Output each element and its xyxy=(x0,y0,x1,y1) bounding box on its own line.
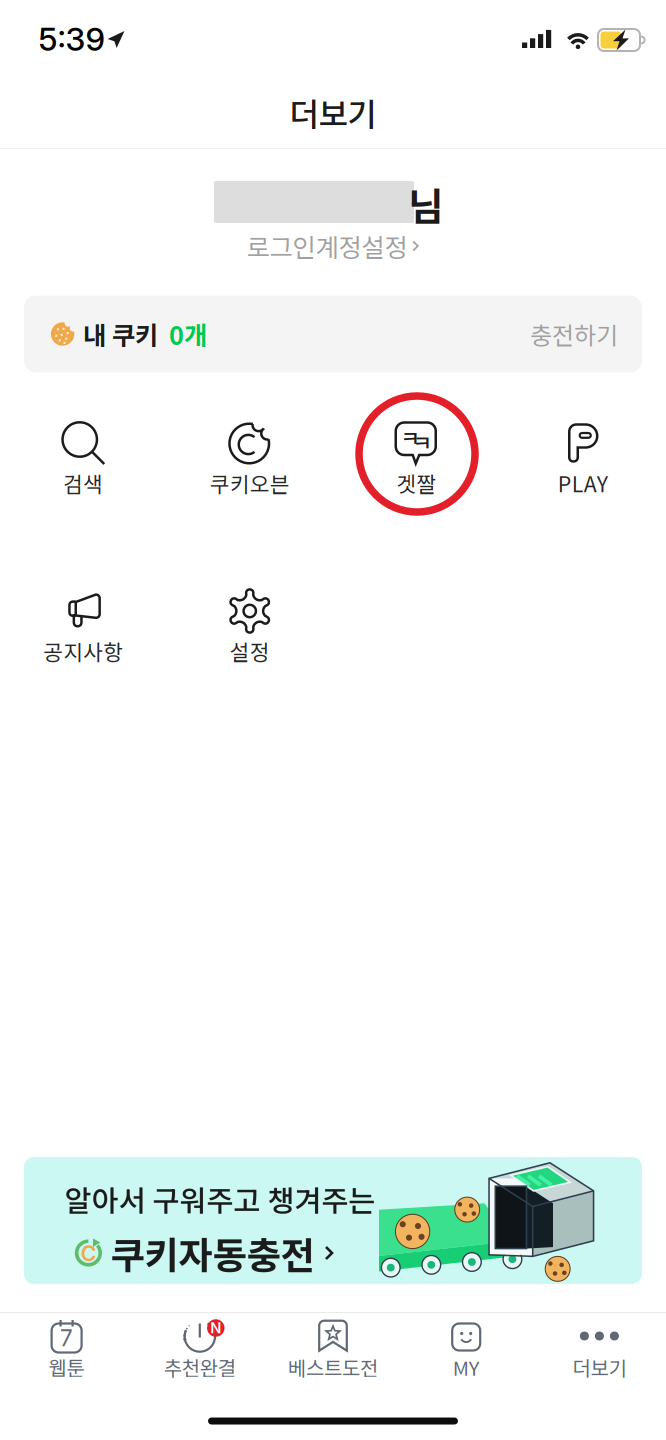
staticText: ㅋ xyxy=(412,427,432,457)
button[interactable]: 베스트도전 xyxy=(266,1307,400,1389)
button[interactable]: N xyxy=(133,1307,266,1389)
button[interactable]: 7 xyxy=(0,1307,133,1389)
button[interactable]: MY xyxy=(400,1307,533,1389)
staticText: 베스트도전 xyxy=(288,1352,378,1381)
staticText: 설정 xyxy=(230,636,270,666)
staticText: 쿠키자동충전 xyxy=(110,1226,314,1280)
staticText: 공지사항 xyxy=(43,636,123,666)
staticText: MY xyxy=(453,1352,480,1381)
staticText: 내 쿠키 xyxy=(83,316,158,352)
button[interactable]: PLAY xyxy=(500,414,666,524)
staticText: 알아서 구워주고 챙겨주는 xyxy=(64,1178,375,1220)
button[interactable]: 쿠키오븐 xyxy=(167,414,333,524)
staticText: PLAY xyxy=(558,468,608,498)
staticText: 5:39 xyxy=(38,20,105,58)
staticText: 쿠키오븐 xyxy=(210,468,290,498)
button[interactable]: 공지사항 xyxy=(0,582,166,692)
button[interactable]: 검색 xyxy=(0,414,166,524)
staticText: 웹툰 xyxy=(49,1352,85,1381)
staticText: 0개 xyxy=(169,316,207,352)
button[interactable]: 로그인계정설정 xyxy=(236,229,429,263)
button[interactable]: ㅋ xyxy=(333,414,499,524)
staticText: ㅋ xyxy=(400,422,420,453)
button[interactable]: 더보기 xyxy=(533,1307,666,1389)
staticText: 로그인계정설정 xyxy=(246,228,407,264)
button[interactable]: 더보기 xyxy=(233,82,433,142)
staticText: N xyxy=(210,1319,221,1337)
button[interactable]: 설정 xyxy=(167,582,333,692)
button[interactable]: 알아서 구워주고 챙겨주는 xyxy=(24,1157,642,1284)
button[interactable]: 내 쿠키 xyxy=(24,295,642,372)
staticText: 더보기 xyxy=(572,1352,626,1381)
staticText: 겟짤 xyxy=(396,468,436,498)
staticText: 님 xyxy=(408,176,444,232)
staticText: 7 xyxy=(60,1324,73,1352)
staticText: 더보기 xyxy=(289,89,376,135)
staticText: 추천완결 xyxy=(164,1352,236,1381)
staticText: C xyxy=(80,1241,96,1266)
staticText: 충전하기 xyxy=(530,317,618,351)
staticText: 검색 xyxy=(63,468,103,498)
